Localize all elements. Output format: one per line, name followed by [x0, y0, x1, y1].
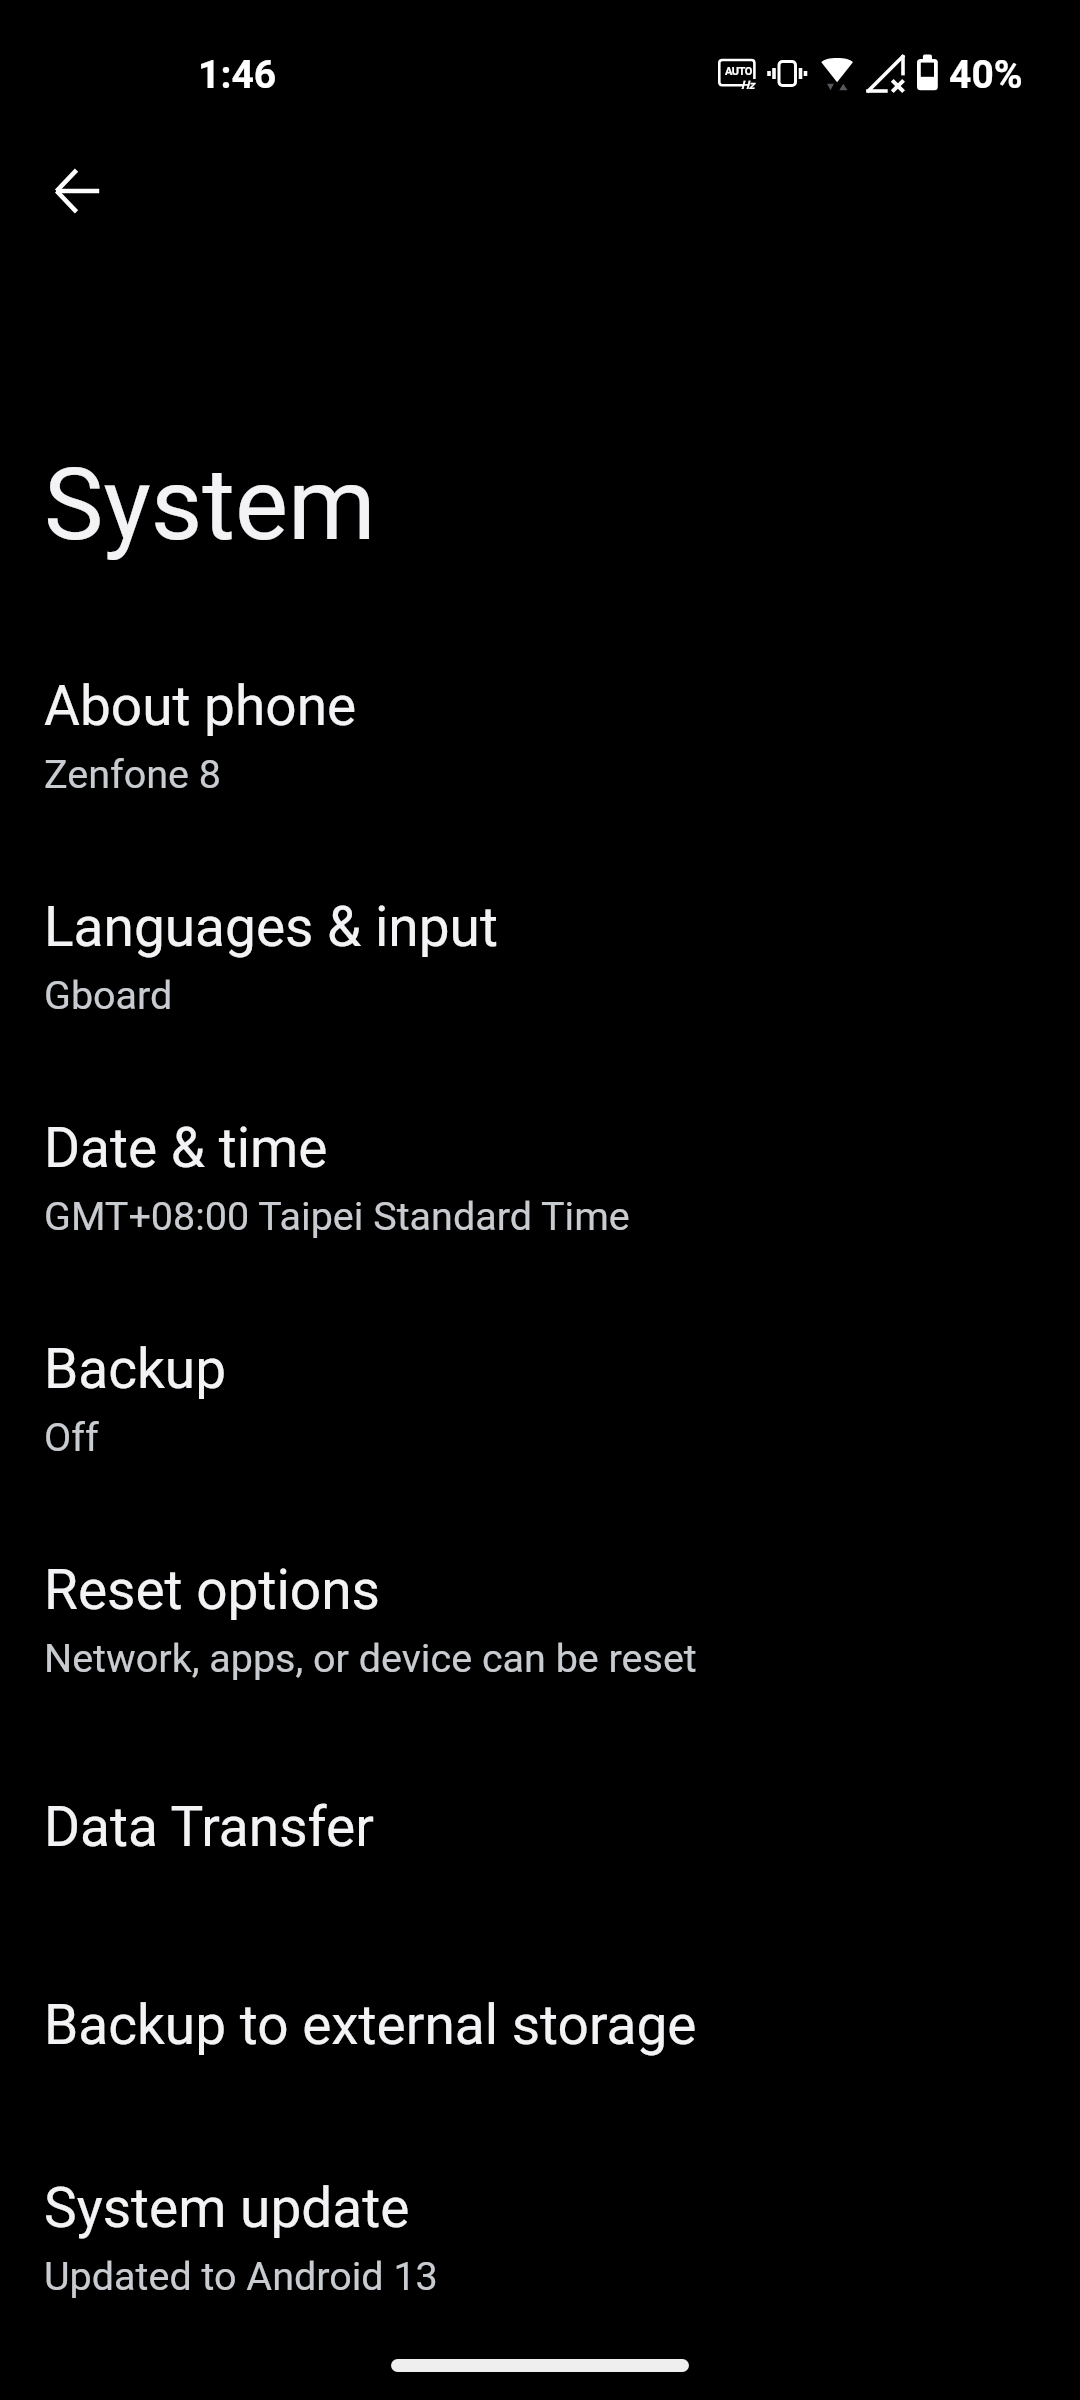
staticText: System — [44, 446, 376, 563]
button[interactable]: Backup — [0, 1286, 1080, 1507]
button[interactable]: Reset options — [0, 1507, 1080, 1728]
staticText: AUTO — [725, 65, 752, 78]
staticText: System update — [44, 2176, 410, 2240]
staticText: GMT+08:00 Taipei Standard Time — [44, 1193, 630, 1240]
staticText: Data Transfer — [44, 1795, 374, 1859]
staticText: 40% — [949, 52, 1023, 98]
staticText: Backup to external storage — [44, 1993, 697, 2057]
button[interactable]: System update — [0, 2124, 1080, 2345]
button[interactable]: Languages & input — [0, 844, 1080, 1065]
button[interactable]: About phone — [0, 623, 1080, 844]
staticText: Backup — [44, 1337, 227, 1401]
staticText: Date & time — [44, 1116, 328, 1180]
staticText: Off — [44, 1414, 99, 1461]
button[interactable]: Data Transfer — [0, 1728, 1080, 1926]
staticText: Reset options — [44, 1558, 380, 1622]
button[interactable]: Backup to external storage — [0, 1926, 1080, 2124]
button[interactable]: Date & time — [0, 1065, 1080, 1286]
staticText: About phone — [44, 674, 357, 738]
staticText: Gboard — [44, 972, 173, 1019]
staticText: 1:46 — [198, 52, 277, 98]
staticText: Languages & input — [44, 895, 498, 959]
staticText: Zenfone 8 — [44, 751, 222, 798]
staticText: Network, apps, or device can be reset — [44, 1635, 697, 1682]
staticText: Hz — [741, 78, 755, 91]
staticText: Updated to Android 13 — [44, 2253, 438, 2300]
button[interactable]: Back — [32, 146, 122, 236]
